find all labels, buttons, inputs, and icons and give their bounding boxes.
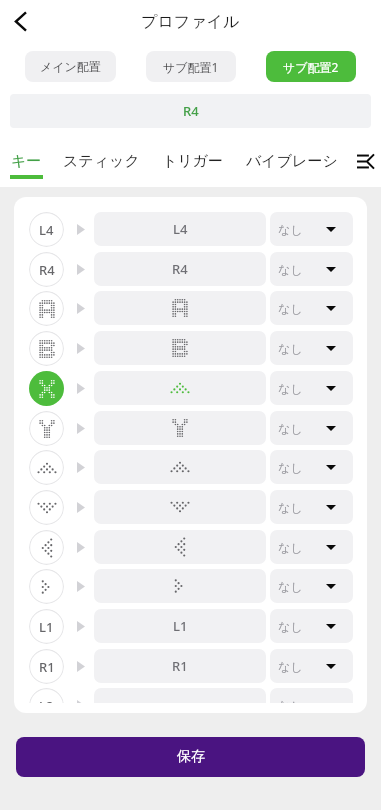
button[interactable]: なし bbox=[270, 411, 353, 445]
button[interactable]: L1 bbox=[14, 606, 367, 646]
button[interactable]: バイブレーシ bbox=[234, 128, 349, 187]
staticText: なし bbox=[278, 262, 303, 277]
button[interactable]: なし bbox=[14, 566, 367, 606]
button[interactable]: L1 bbox=[94, 609, 266, 643]
button[interactable]: Back bbox=[0, 0, 43, 43]
staticText: サブ配置1 bbox=[163, 59, 219, 75]
button[interactable]: なし bbox=[270, 252, 353, 286]
staticText: スティック bbox=[63, 152, 140, 171]
button[interactable]: なし bbox=[270, 212, 353, 246]
button[interactable]: L2 bbox=[14, 685, 367, 703]
button[interactable]: なし bbox=[14, 408, 367, 448]
button[interactable]: なし bbox=[14, 328, 367, 368]
staticText: プロファイル bbox=[141, 12, 240, 32]
staticText: なし bbox=[278, 619, 303, 634]
button[interactable]: なし bbox=[14, 487, 367, 527]
button[interactable] bbox=[94, 371, 266, 405]
button[interactable]: R4 bbox=[10, 94, 371, 128]
staticText: R1 bbox=[39, 658, 55, 676]
staticText: なし bbox=[278, 659, 303, 674]
button[interactable] bbox=[94, 490, 266, 524]
button[interactable]: R1 bbox=[14, 646, 367, 686]
staticText: なし bbox=[278, 460, 303, 475]
button[interactable]: なし bbox=[270, 450, 353, 484]
staticText: L1 bbox=[39, 618, 54, 636]
staticText: なし bbox=[278, 301, 303, 316]
staticText: R1 bbox=[172, 657, 188, 675]
staticText: なし bbox=[278, 341, 303, 356]
staticText: なし bbox=[278, 540, 303, 555]
staticText: なし bbox=[278, 698, 303, 703]
button[interactable]: なし bbox=[270, 291, 353, 325]
button[interactable]: なし bbox=[14, 447, 367, 487]
button[interactable] bbox=[94, 291, 266, 325]
button[interactable]: L4 bbox=[94, 212, 266, 246]
staticText: キー bbox=[11, 152, 42, 171]
staticText: なし bbox=[278, 421, 303, 436]
staticText: なし bbox=[278, 500, 303, 515]
button[interactable]: なし bbox=[14, 527, 367, 567]
staticText: バイブレーシ bbox=[246, 152, 338, 171]
button[interactable] bbox=[94, 450, 266, 484]
button[interactable]: 保存 bbox=[16, 737, 365, 777]
staticText: L4 bbox=[173, 220, 188, 238]
button[interactable] bbox=[94, 530, 266, 564]
button[interactable]: R4 bbox=[14, 249, 367, 289]
button[interactable]: なし bbox=[270, 490, 353, 524]
button[interactable]: なし bbox=[270, 609, 353, 643]
staticText: R4 bbox=[39, 261, 55, 279]
button[interactable]: メイン配置 bbox=[25, 51, 116, 82]
staticText: R4 bbox=[183, 102, 199, 120]
button[interactable]: なし bbox=[270, 331, 353, 365]
button[interactable]: なし bbox=[270, 688, 353, 703]
button[interactable]: なし bbox=[14, 288, 367, 328]
button[interactable]: なし bbox=[14, 368, 367, 408]
staticText: なし bbox=[278, 381, 303, 396]
staticText: サブ配置2 bbox=[283, 59, 339, 75]
button[interactable] bbox=[94, 331, 266, 365]
button[interactable]: キー bbox=[0, 128, 52, 187]
staticText: トリガー bbox=[162, 152, 224, 171]
button[interactable]: R4 bbox=[94, 252, 266, 286]
staticText: なし bbox=[278, 222, 303, 237]
staticText: 保存 bbox=[177, 748, 205, 766]
button[interactable]: スティック bbox=[52, 128, 151, 187]
staticText: R4 bbox=[172, 260, 188, 278]
button[interactable]: サブ配置2 bbox=[266, 51, 356, 82]
staticText: なし bbox=[278, 579, 303, 594]
button[interactable]: トリガー bbox=[151, 128, 234, 187]
button[interactable] bbox=[94, 569, 266, 603]
button[interactable]: サブ配置1 bbox=[146, 51, 236, 82]
button[interactable] bbox=[94, 411, 266, 445]
button[interactable]: なし bbox=[270, 371, 353, 405]
staticText: L4 bbox=[39, 221, 54, 239]
button[interactable]: L4 bbox=[14, 209, 367, 249]
staticText: L2 bbox=[39, 697, 54, 703]
button[interactable]: なし bbox=[270, 530, 353, 564]
staticText: メイン配置 bbox=[40, 59, 101, 74]
button[interactable]: More tabs bbox=[349, 128, 381, 187]
button[interactable]: なし bbox=[270, 569, 353, 603]
button[interactable]: なし bbox=[270, 649, 353, 683]
button[interactable]: R1 bbox=[94, 649, 266, 683]
staticText: L1 bbox=[173, 617, 188, 635]
